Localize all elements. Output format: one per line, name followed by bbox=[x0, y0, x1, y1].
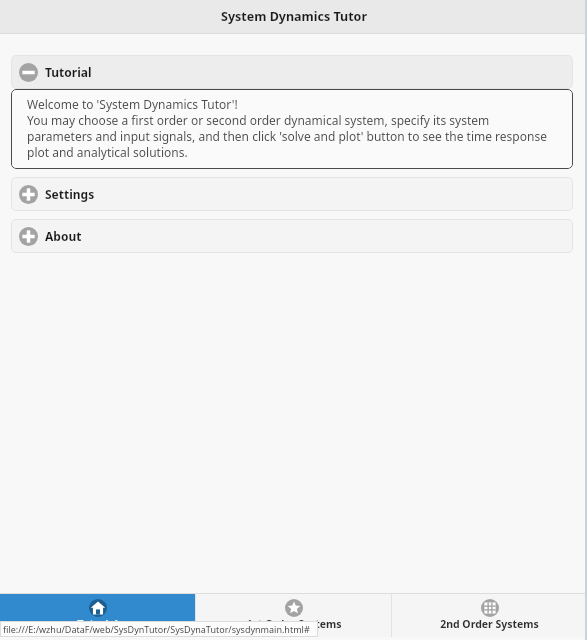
staticText: 2nd Order Systems bbox=[440, 617, 539, 631]
staticText: You may choose a first order or second o… bbox=[27, 112, 547, 160]
staticText: 1st Order Systems bbox=[246, 617, 342, 631]
staticText: Tutorial bbox=[77, 617, 118, 631]
button[interactable]: Tutorial bbox=[11, 55, 573, 89]
staticText: Welcome to 'System Dynamics Tutor'! bbox=[27, 96, 238, 112]
staticText: file:///E:/wzhu/DataF/web/SysDynTutor/Sy… bbox=[3, 623, 310, 635]
button[interactable]: Settings bbox=[11, 177, 573, 211]
staticText: System Dynamics Tutor bbox=[221, 8, 367, 25]
staticText: Settings bbox=[45, 186, 95, 202]
staticText: Tutorial bbox=[45, 64, 92, 80]
button[interactable]: 1st Order Systems bbox=[196, 594, 391, 637]
button[interactable]: 2nd Order Systems bbox=[392, 594, 587, 637]
button[interactable]: About bbox=[11, 219, 573, 253]
staticText: About bbox=[45, 228, 82, 244]
button[interactable]: Tutorial bbox=[0, 594, 195, 637]
